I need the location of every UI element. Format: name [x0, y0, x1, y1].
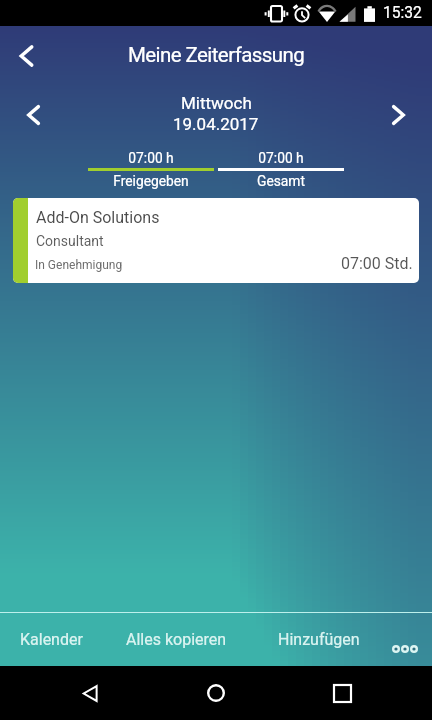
staticText: 19.04.2017: [173, 114, 259, 134]
button[interactable]: Startbildschirm: [192, 669, 240, 717]
button[interactable]: Zurück: [66, 669, 114, 717]
staticText: Consultant: [36, 233, 104, 249]
staticText: Hinzufügen: [278, 630, 360, 649]
button[interactable]: Hinzufügen: [250, 613, 388, 666]
button[interactable]: Zurück: [3, 32, 51, 80]
button[interactable]: Nächster Tag: [374, 91, 422, 139]
staticText: Gesamt: [218, 173, 344, 189]
staticText: Alles kopieren: [126, 630, 227, 649]
staticText: Mittwoch: [181, 93, 252, 113]
button[interactable]: Vorheriger Tag: [10, 91, 58, 139]
button[interactable]: Übersicht: [318, 669, 366, 717]
staticText: 15:32: [383, 4, 422, 22]
staticText: Meine Zeiterfassung: [128, 43, 305, 67]
button[interactable]: Alles kopieren: [102, 613, 250, 666]
staticText: Freigegeben: [88, 173, 214, 189]
staticText: Add-On Solutions: [36, 208, 160, 227]
button[interactable]: Kalender: [0, 613, 102, 666]
staticText: In Genehmigung: [35, 258, 123, 272]
staticText: Kalender: [20, 630, 83, 649]
staticText: 07:00 h: [88, 150, 214, 166]
button[interactable]: Weitere Optionen: [392, 631, 424, 657]
staticText: 07:00 h: [218, 150, 344, 166]
button[interactable]: Add-On Solutions: [13, 198, 419, 283]
staticText: 07:00 Std.: [341, 254, 413, 273]
